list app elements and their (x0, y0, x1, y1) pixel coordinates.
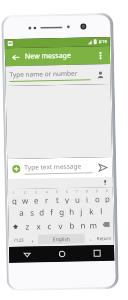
staticText: m (89, 219, 98, 230)
button[interactable]: 7 (73, 189, 82, 204)
button[interactable]: ?123 (10, 234, 27, 246)
staticText: Type text message (24, 162, 81, 172)
staticText: d (39, 206, 44, 217)
staticText: New message (25, 51, 71, 62)
staticText: q (12, 195, 17, 205)
staticText: x (36, 220, 42, 231)
staticText: l (100, 205, 103, 216)
button[interactable]: f (47, 205, 56, 218)
staticText: s (30, 207, 34, 218)
button[interactable]: Shift (9, 220, 22, 233)
staticText: t (56, 194, 59, 204)
staticText: 3 (35, 189, 38, 195)
staticText: Type name or number (9, 69, 78, 79)
button[interactable]: a (16, 206, 26, 219)
button[interactable]: More options (94, 49, 106, 61)
button[interactable]: 3 (31, 189, 41, 205)
button[interactable]: 1 (9, 190, 19, 205)
staticText: . (90, 233, 92, 243)
staticText: c (47, 220, 52, 231)
button[interactable]: 2 (20, 190, 30, 205)
button[interactable]: s (27, 205, 36, 219)
staticText: f (50, 206, 53, 217)
button[interactable]: 8 (83, 188, 92, 203)
staticText: 4 (46, 189, 49, 194)
button[interactable]: 9 (93, 188, 102, 203)
button[interactable]: Back (9, 51, 21, 63)
button[interactable]: b (66, 219, 77, 232)
staticText: k (89, 205, 94, 216)
button[interactable]: x (33, 219, 44, 233)
button[interactable]: Type name or number (5, 64, 111, 86)
button[interactable]: h (67, 205, 76, 218)
staticText: u (75, 194, 80, 204)
staticText: r (45, 194, 49, 204)
button[interactable]: g (57, 205, 66, 218)
button[interactable]: English (38, 233, 85, 244)
staticText: w (22, 195, 29, 205)
staticText: a (19, 207, 24, 218)
staticText: n (80, 219, 86, 231)
button[interactable]: Back (9, 246, 44, 263)
staticText: j (80, 205, 83, 217)
button[interactable]: c (44, 219, 55, 232)
staticText: , (32, 235, 34, 245)
button[interactable]: Home (44, 246, 79, 262)
staticText: v (58, 220, 64, 231)
staticText: 8 (86, 188, 89, 193)
button[interactable]: Attach (11, 164, 21, 174)
button[interactable]: n (77, 218, 88, 232)
staticText: 1 (13, 190, 16, 195)
staticText: Return (97, 235, 112, 241)
button[interactable]: Type text message (24, 161, 92, 175)
button[interactable]: Send (96, 161, 108, 173)
staticText: ?123 (14, 237, 24, 243)
staticText: g (59, 206, 64, 217)
staticText: z (25, 221, 30, 232)
button[interactable]: k (87, 204, 96, 217)
staticText: English (53, 236, 71, 243)
button[interactable]: 0 (103, 188, 112, 203)
button[interactable]: z (22, 220, 33, 233)
staticText: 8:19 (99, 39, 107, 44)
staticText: 6 (66, 189, 69, 194)
staticText: 7 (76, 189, 79, 194)
button[interactable]: l (97, 204, 106, 217)
button[interactable]: Recents (79, 245, 114, 262)
button[interactable]: Backspace (99, 218, 113, 231)
staticText: 5 (56, 189, 59, 194)
button[interactable]: . (86, 232, 95, 244)
button[interactable]: 4 (42, 189, 52, 204)
button[interactable]: m (88, 218, 99, 231)
staticText: o (95, 193, 100, 203)
staticText: b (69, 220, 75, 231)
staticText: h (69, 206, 74, 217)
staticText: i (86, 193, 89, 203)
button[interactable]: 5 (53, 189, 62, 204)
button[interactable]: d (37, 205, 46, 218)
button[interactable]: j (77, 204, 86, 218)
button[interactable]: v (55, 219, 66, 232)
staticText: 0 (106, 188, 109, 193)
staticText: y (65, 194, 70, 204)
button[interactable]: Return (96, 232, 113, 244)
staticText: 9 (96, 188, 99, 193)
button[interactable]: Add contact (95, 69, 106, 80)
button[interactable]: , (28, 233, 37, 246)
staticText: 2 (24, 190, 27, 195)
staticText: p (105, 193, 110, 203)
staticText: e (34, 194, 39, 205)
button[interactable]: 6 (63, 189, 72, 204)
